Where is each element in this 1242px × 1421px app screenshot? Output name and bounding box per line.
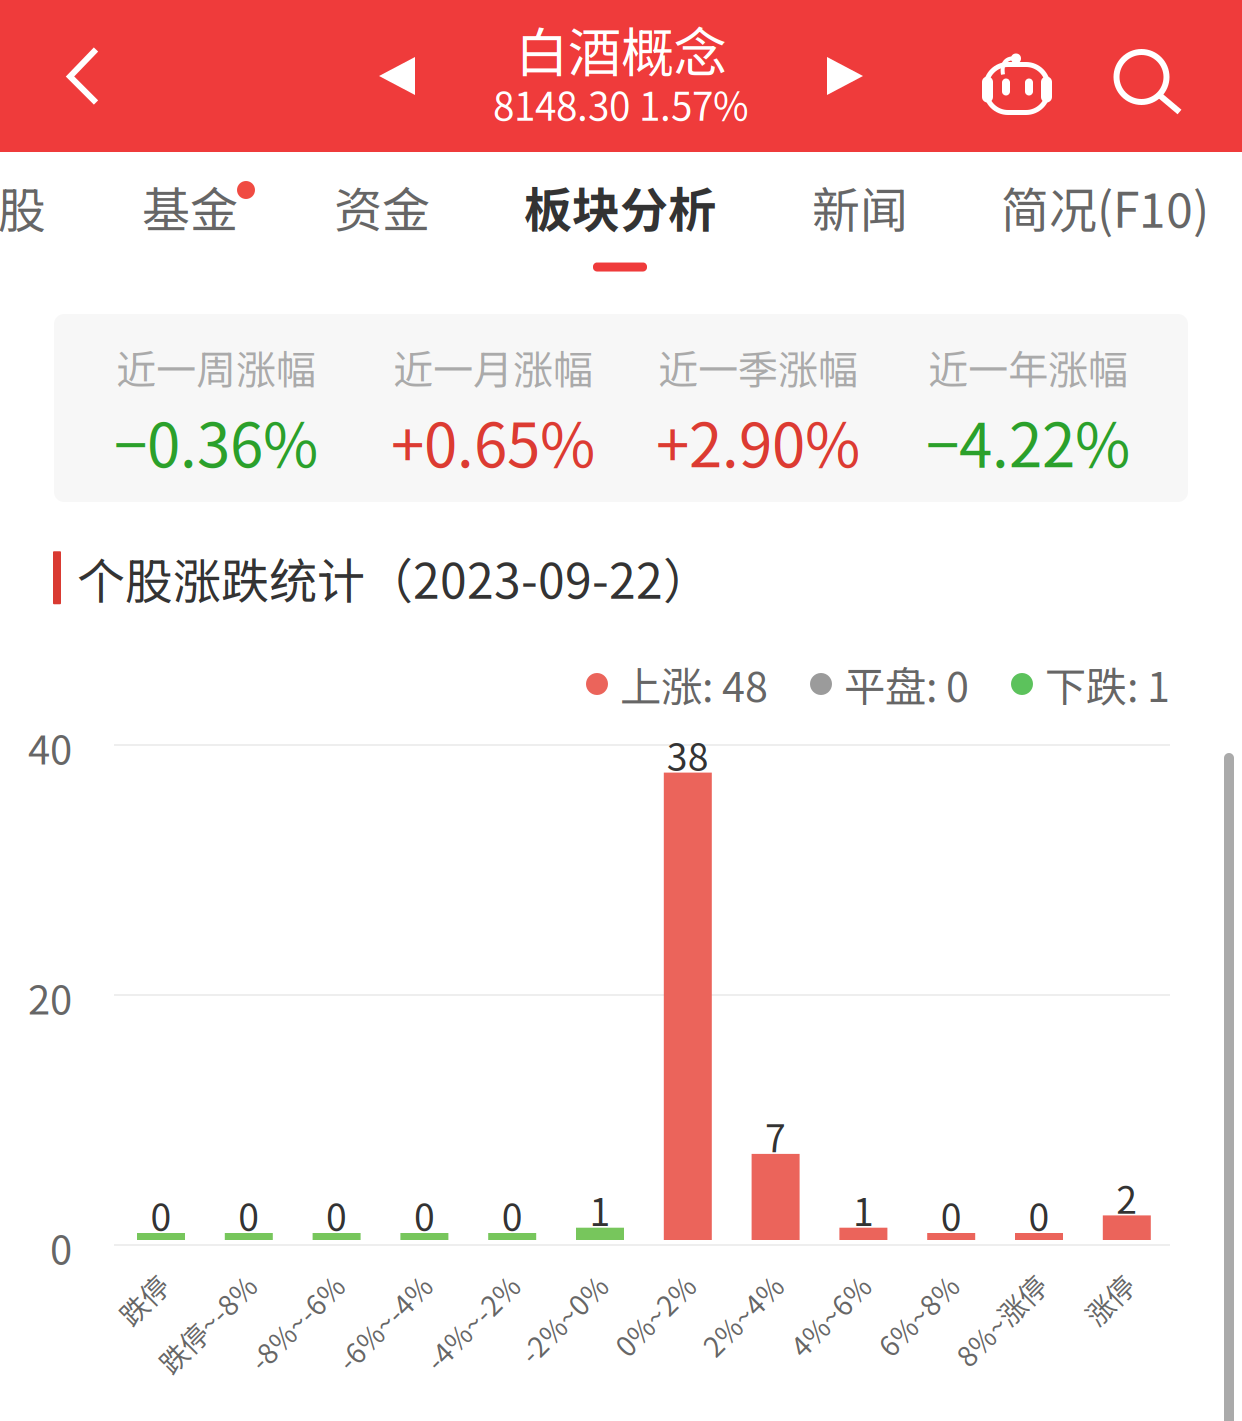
staticText: 2%~4% [692, 1295, 792, 1335]
staticText: 板块分析 [524, 172, 716, 241]
staticText: 6%~8% [868, 1295, 968, 1335]
staticText: 8%~涨停 [944, 1300, 1058, 1340]
button[interactable]: Previous sector [337, 0, 457, 152]
button[interactable]: Back [17, 0, 149, 152]
staticText: 0 [238, 1188, 259, 1242]
staticText: 0 [502, 1188, 523, 1242]
staticText: 上涨: 48 [620, 654, 768, 714]
staticText: 0 [50, 1218, 72, 1276]
staticText: -6%~-4% [324, 1302, 444, 1342]
staticText: 20 [28, 968, 72, 1026]
staticText: 涨停 [1081, 1279, 1137, 1320]
staticText: 0%~2% [605, 1295, 705, 1335]
button[interactable]: 基金 [136, 152, 244, 290]
staticText: 平盘: 0 [844, 654, 969, 714]
staticText: 下跌: 1 [1045, 654, 1170, 714]
staticText: -8%~-6% [236, 1302, 356, 1342]
staticText: 1 [589, 1183, 610, 1237]
button[interactable]: 简况(F10) [995, 152, 1215, 290]
button[interactable]: 资金 [328, 152, 436, 290]
staticText: 近一月涨幅 [393, 338, 593, 396]
staticText: +0.65% [391, 398, 595, 484]
staticText: 0 [414, 1188, 435, 1242]
staticText: -4%~-2% [412, 1302, 532, 1342]
staticText: 4%~6% [780, 1295, 880, 1336]
staticText: 白酒概念 [515, 10, 727, 88]
staticText: 40 [28, 718, 72, 776]
staticText: -2%~0% [508, 1298, 618, 1339]
staticText: 8148.30 1.57% [493, 76, 749, 132]
staticText: +2.90% [656, 398, 860, 484]
button[interactable]: Assistant [952, 6, 1082, 158]
staticText: 近一年涨幅 [928, 338, 1128, 396]
button[interactable]: 板块分析 [518, 152, 722, 290]
staticText: −0.36% [114, 398, 318, 484]
button[interactable]: 新闻 [806, 152, 914, 290]
button[interactable]: Next sector [785, 0, 905, 152]
staticText: 7 [765, 1109, 786, 1163]
button[interactable]: 股 [0, 152, 52, 290]
staticText: 近一季涨幅 [658, 338, 858, 396]
staticText: 0 [326, 1188, 347, 1242]
staticText: 0 [150, 1188, 171, 1242]
staticText: 近一周涨幅 [116, 338, 316, 396]
button[interactable]: Search [1084, 6, 1214, 158]
staticText: 个股涨跌统计（2023-09-22） [77, 543, 711, 612]
staticText: 新闻 [812, 172, 908, 241]
staticText: 38 [667, 728, 709, 782]
staticText: 1 [853, 1183, 874, 1237]
staticText: 资金 [334, 172, 430, 241]
staticText: 0 [1028, 1188, 1049, 1242]
staticText: 跌停~-8% [145, 1303, 269, 1344]
staticText: 基金 [142, 172, 238, 241]
staticText: 简况(F10) [1001, 172, 1209, 241]
staticText: 跌停 [115, 1279, 171, 1320]
staticText: 股 [0, 172, 46, 241]
staticText: 2 [1116, 1170, 1137, 1224]
staticText: 0 [941, 1188, 962, 1242]
staticText: −4.22% [926, 398, 1130, 484]
